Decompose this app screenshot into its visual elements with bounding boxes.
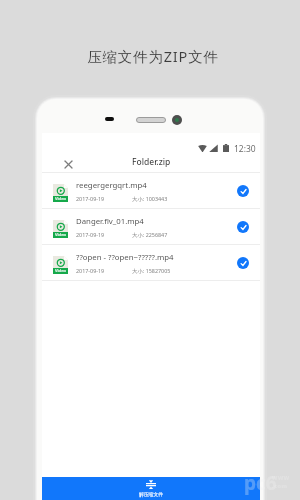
- staticText: 大小: 1003443: [132, 195, 168, 202]
- button[interactable]: Video: [42, 209, 260, 244]
- staticText: Folder.zip: [132, 156, 171, 168]
- staticText: 2017-09-19: [76, 195, 105, 202]
- staticText: Video: [55, 232, 67, 238]
- staticText: 12:30: [234, 143, 256, 155]
- staticText: Danger.flv_01.mp4: [76, 216, 144, 227]
- staticText: Video: [55, 196, 67, 202]
- staticText: 大小: 2256847: [132, 231, 168, 238]
- staticText: Video: [55, 268, 67, 274]
- button[interactable]: Close: [60, 156, 76, 172]
- staticText: 压缩文件为ZIP文件: [3, 46, 300, 66]
- staticText: 解压缩文件: [139, 491, 163, 497]
- staticText: 大小: 15827005: [132, 267, 171, 274]
- staticText: reegergergqrt.mp4: [76, 180, 147, 191]
- button[interactable]: Video: [42, 245, 260, 280]
- button[interactable]: Video: [42, 173, 260, 208]
- staticText: 2017-09-19: [76, 267, 105, 274]
- staticText: pc6: [244, 470, 277, 496]
- staticText: 2017-09-19: [76, 231, 105, 238]
- staticText: ??open - ??open~?????.mp4: [76, 252, 174, 263]
- button[interactable]: 解压缩文件: [42, 477, 260, 500]
- staticText: .com: [272, 482, 288, 489]
